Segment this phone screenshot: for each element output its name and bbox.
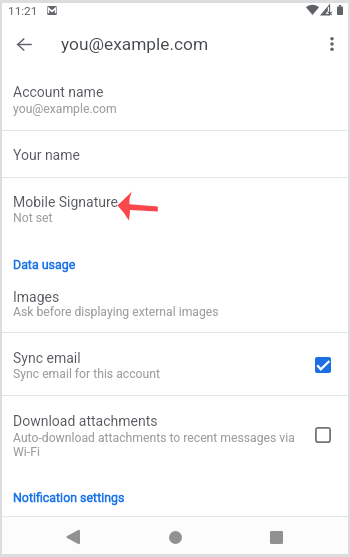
staticText: Images (13, 289, 60, 305)
button[interactable] (0, 178, 350, 245)
staticText: Account name (13, 84, 104, 100)
staticText: 11:21 (8, 4, 38, 18)
staticText: Not set (13, 211, 53, 225)
staticText: Sync email (13, 350, 81, 366)
staticText: Auto-download attachments to recent mess… (13, 431, 303, 459)
staticText: Your name (13, 147, 80, 163)
staticText: Sync email for this account (13, 367, 160, 381)
button[interactable] (0, 131, 350, 177)
button[interactable] (0, 478, 350, 516)
button[interactable]: More options (317, 29, 347, 59)
button[interactable]: Home (151, 517, 199, 557)
staticText: Mobile Signature (13, 194, 119, 210)
staticText: you@example.com (61, 34, 209, 54)
staticText: Ask before displaying external images (13, 305, 219, 319)
button[interactable] (0, 281, 350, 332)
staticText: Notification settings (13, 490, 125, 505)
staticText: Download attachments (13, 413, 158, 429)
button[interactable] (0, 69, 350, 130)
button[interactable]: Recents (252, 517, 300, 557)
staticText: you@example.com (13, 102, 117, 116)
button[interactable]: Back (8, 28, 40, 60)
staticText: Data usage (13, 257, 76, 272)
button[interactable] (0, 396, 350, 478)
button[interactable] (0, 245, 350, 281)
button[interactable]: Back (49, 517, 97, 557)
button[interactable] (0, 333, 350, 395)
